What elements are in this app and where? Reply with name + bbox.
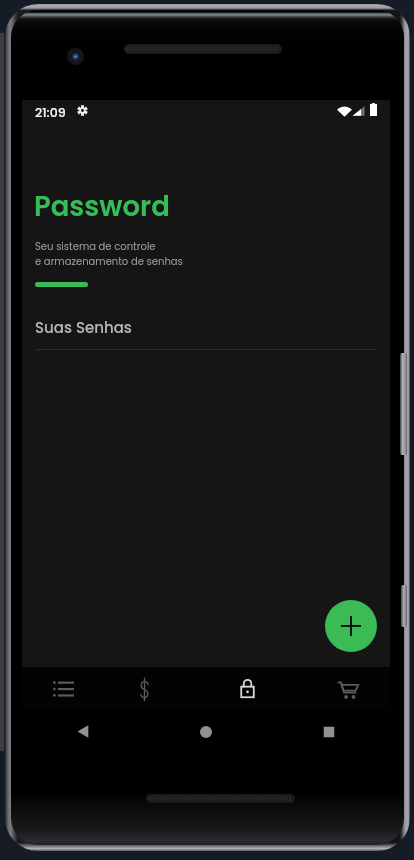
button[interactable]: Adicionar senha	[325, 600, 377, 652]
staticText: Seu sistema de controle	[35, 239, 156, 253]
staticText: 21:09	[35, 104, 66, 121]
staticText: e armazenamento de senhas	[35, 254, 183, 268]
button[interactable]: Back	[22, 710, 144, 755]
staticText: Password	[34, 187, 170, 225]
button[interactable]: Carrinho	[302, 667, 394, 710]
button[interactable]: Home	[144, 710, 267, 755]
button[interactable]: Senhas	[201, 667, 293, 710]
button[interactable]: Recents	[267, 710, 390, 755]
staticText: Suas Senhas	[35, 317, 132, 338]
button[interactable]: Lista	[17, 667, 109, 710]
button[interactable]: Pagamentos	[98, 667, 190, 710]
